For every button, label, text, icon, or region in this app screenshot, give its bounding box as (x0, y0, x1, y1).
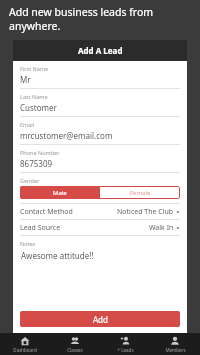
button[interactable]: Dashboard (0, 333, 50, 355)
staticText: Noticed The Club (117, 207, 174, 217)
staticText: Gender (20, 177, 40, 184)
staticText: Classes (67, 347, 83, 353)
staticText: Add new business leads from (9, 5, 154, 19)
button[interactable]: First Name (20, 61, 180, 89)
staticText: Male (53, 189, 67, 197)
button[interactable]: Classes (50, 333, 100, 355)
button[interactable]: Members (150, 333, 200, 355)
staticText: Add (93, 314, 108, 325)
button[interactable]: Contact Method (20, 204, 180, 220)
button[interactable]: + Leads (100, 333, 150, 355)
button[interactable]: Add (20, 311, 180, 327)
staticText: Walk In (149, 223, 174, 233)
button[interactable]: Last Name (20, 89, 180, 117)
button[interactable]: Male (20, 186, 100, 199)
staticText: Mr (20, 74, 31, 85)
staticText: anywhere. (9, 19, 61, 33)
staticText: Awesome attitude!! (21, 250, 94, 261)
staticText: Phone Number (20, 149, 60, 156)
staticText: Members (165, 347, 186, 353)
staticText: Add A Lead (78, 45, 123, 56)
staticText: Lead Source (20, 223, 61, 233)
staticText: Contact Method (20, 207, 73, 217)
staticText: + Leads (117, 347, 134, 353)
staticText: mrcustomer@email.com (20, 130, 113, 141)
button[interactable]: Phone Number (20, 145, 180, 173)
staticText: 8675309 (20, 158, 53, 169)
staticText: Female (130, 189, 151, 197)
staticText: Customer (20, 102, 57, 113)
staticText: Notes (20, 240, 36, 247)
button[interactable]: Email (20, 117, 180, 145)
button[interactable]: Female (100, 186, 180, 199)
staticText: Email (20, 121, 35, 128)
button[interactable]: Notes (20, 236, 180, 261)
staticText: Dashboard (13, 347, 37, 353)
staticText: First Name (20, 65, 49, 72)
button[interactable]: Lead Source (20, 220, 180, 236)
staticText: Last Name (20, 93, 48, 100)
